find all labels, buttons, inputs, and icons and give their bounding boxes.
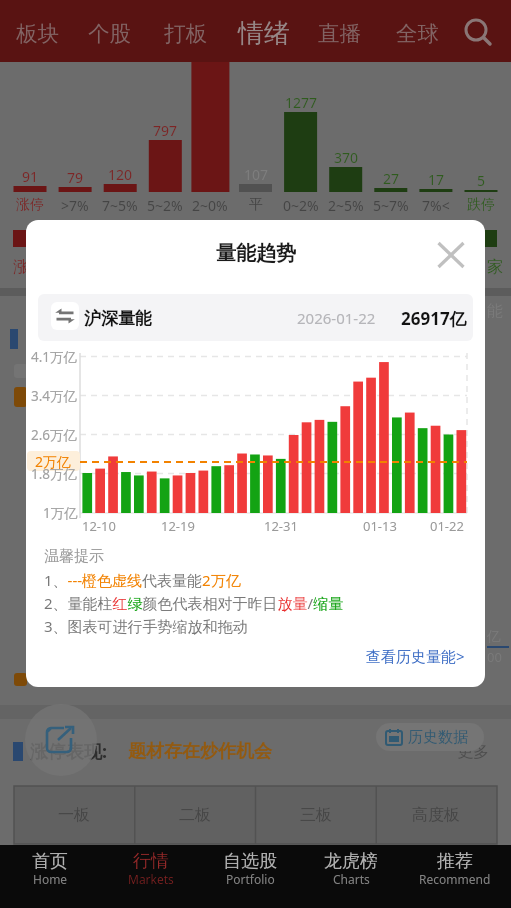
button[interactable]: 情绪 [224, 8, 304, 58]
button[interactable] [103, 845, 199, 895]
staticText: 更多 [457, 742, 489, 762]
staticText: 2万亿 [35, 452, 72, 471]
staticText: 量能趋势 [216, 241, 296, 266]
staticText: 平 [249, 196, 263, 214]
button[interactable] [433, 237, 469, 273]
staticText: 2.6万亿 [31, 426, 78, 444]
staticText: 17 [428, 170, 445, 189]
staticText: 26917亿 [401, 307, 467, 330]
staticText: Markets [128, 871, 174, 887]
staticText: 题材存在炒作机会 [128, 740, 272, 763]
staticText: 二板 [179, 805, 211, 825]
staticText: 情绪 [238, 17, 290, 50]
staticText: Recommend [419, 871, 491, 887]
staticText: 龙虎榜 [324, 850, 378, 873]
staticText: 1万亿 [43, 504, 78, 522]
staticText: 120 [108, 165, 133, 184]
staticText: 5~7% [373, 196, 409, 215]
button[interactable] [460, 14, 496, 50]
staticText: 涨 [13, 257, 29, 277]
staticText: 全球 [396, 20, 439, 47]
staticText: 1.8万亿 [31, 465, 78, 483]
staticText: 12-10 [82, 517, 116, 535]
button[interactable] [376, 723, 484, 751]
staticText: 跌停 [467, 196, 495, 214]
staticText: 27 [383, 169, 400, 188]
button[interactable] [407, 845, 503, 895]
staticText: 首页 [32, 850, 68, 873]
staticText: 自选股 [223, 850, 277, 873]
staticText: 7%< [422, 196, 450, 215]
staticText: 01-13 [363, 517, 397, 535]
staticText: 温馨提示 [44, 547, 104, 566]
button[interactable] [38, 294, 473, 341]
button[interactable] [2, 845, 98, 895]
staticText: 亿 [487, 628, 501, 646]
staticText: 107 [244, 165, 269, 184]
staticText: 涨停表现: [30, 739, 108, 764]
staticText: 行情 [133, 850, 169, 873]
staticText: 板块 [16, 20, 59, 47]
button[interactable] [303, 845, 399, 895]
staticText: 3.4万亿 [31, 387, 78, 405]
staticText: 3、图表可进行手势缩放和拖动 [44, 616, 248, 636]
staticText: 00 [487, 648, 502, 666]
button[interactable] [25, 704, 97, 776]
staticText: 7~5% [102, 196, 138, 215]
staticText: 家 [487, 257, 503, 277]
staticText: 5~2% [147, 196, 183, 215]
staticText: 历史数据 [408, 728, 468, 747]
staticText: 直播 [318, 20, 361, 47]
button[interactable] [202, 845, 298, 895]
staticText: 79 [67, 168, 84, 187]
staticText: 查看历史量能> [366, 646, 465, 666]
staticText: Portfolio [226, 871, 275, 887]
staticText: Home [33, 871, 68, 887]
staticText: 沪深量能 [84, 308, 152, 329]
staticText: 4.1万亿 [31, 348, 78, 366]
staticText: 2、量能柱红绿颜色代表相对于昨日放量/缩量 [44, 593, 344, 613]
staticText: 91 [22, 167, 39, 186]
staticText: 0~2% [283, 196, 319, 215]
staticText: Charts [333, 871, 370, 887]
staticText: 一板 [58, 805, 90, 825]
button[interactable]: 查看历史量能> [265, 636, 465, 676]
staticText: 1、---橙色虚线代表量能2万亿 [44, 570, 241, 590]
staticText: 370 [334, 148, 359, 167]
staticText: 高度板 [412, 805, 460, 825]
staticText: 推荐 [437, 850, 473, 873]
staticText: 三板 [300, 805, 332, 825]
staticText: 1277 [285, 93, 318, 112]
staticText: 12-31 [264, 517, 298, 535]
staticText: 5 [477, 171, 486, 190]
staticText: 2026-01-22 [297, 308, 376, 328]
staticText: 2~0% [192, 196, 228, 215]
staticText: 01-22 [430, 517, 464, 535]
staticText: 2~5% [328, 196, 364, 215]
staticText: 涨停 [16, 196, 44, 214]
staticText: 个股 [88, 20, 131, 47]
staticText: 797 [153, 121, 178, 140]
staticText: 12-19 [161, 517, 195, 535]
staticText: 打板 [164, 20, 207, 47]
staticText: >7% [61, 196, 89, 215]
staticText: 能 [487, 301, 503, 321]
